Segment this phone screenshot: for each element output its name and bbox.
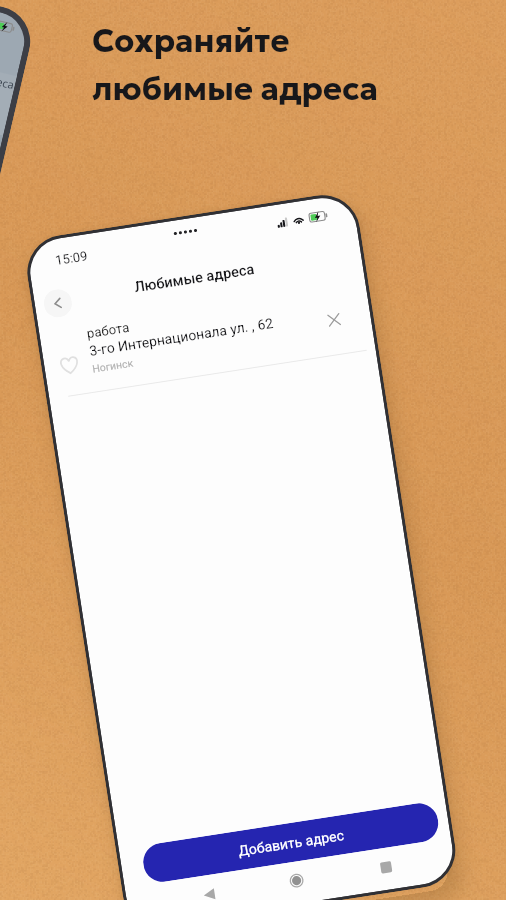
button[interactable]: Удалить: [319, 305, 348, 334]
staticText: 15:09: [54, 248, 89, 268]
button[interactable]: Назад: [42, 287, 74, 319]
staticText: Ногинск: [91, 356, 135, 375]
button[interactable]: Добавить адрес: [140, 801, 441, 884]
staticText: любимые адреса: [92, 69, 378, 109]
staticText: Любимые адреса: [133, 260, 256, 295]
staticText: адреса: [0, 69, 17, 92]
staticText: 3-го Интернационала ул. , 62: [88, 315, 275, 359]
staticText: работа: [86, 320, 130, 341]
button[interactable]: Домой: [284, 868, 309, 893]
button[interactable]: Назад: [196, 882, 221, 900]
staticText: Сохраняйте: [92, 21, 290, 61]
button[interactable]: Недавние приложения: [373, 854, 398, 879]
staticText: Добавить адрес: [237, 827, 345, 859]
